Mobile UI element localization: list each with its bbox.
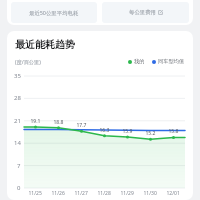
button[interactable]: 同车型均值 [152, 58, 184, 65]
staticText: 我的 [134, 58, 145, 65]
staticText: 最近50公里平均电耗 [29, 9, 79, 16]
staticText: (度/百公里) [15, 58, 41, 65]
button[interactable]: 每公里费用 [102, 2, 189, 23]
staticText: 最近能耗趋势 [15, 38, 75, 51]
button[interactable]: 最近50公里平均电耗 [11, 2, 97, 23]
button[interactable]: 我的 [128, 58, 145, 65]
staticText: 同车型均值 [158, 58, 184, 65]
other: Open details [158, 10, 163, 15]
staticText: 每公里费用 [129, 9, 156, 16]
